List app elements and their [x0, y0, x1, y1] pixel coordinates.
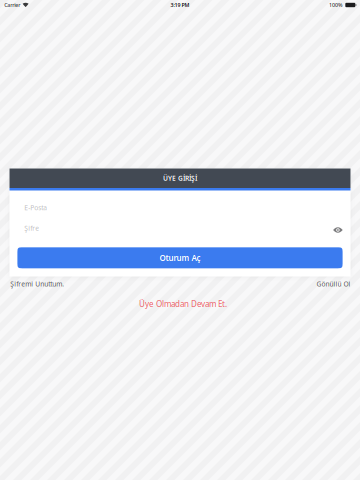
staticText: Üye Olmadan Devam Et. — [139, 298, 227, 309]
staticText: 100% — [329, 1, 343, 9]
button[interactable]: Şifremi Unuttum. — [10, 280, 64, 288]
staticText: Gönüllü Ol — [316, 280, 350, 288]
staticText: Şifremi Unuttum. — [10, 280, 64, 288]
staticText: E-Posta — [24, 203, 47, 212]
button[interactable]: Gönüllü Ol — [316, 280, 350, 288]
staticText: 3:19 PM — [170, 1, 189, 9]
staticText: Şifre — [24, 224, 39, 233]
staticText: ÜYE GİRİŞİ — [163, 174, 197, 183]
staticText: Oturum Aç — [159, 252, 200, 263]
staticText: Carrier — [4, 1, 20, 9]
button[interactable]: Üye Olmadan Devam Et. — [139, 298, 227, 309]
button[interactable]: Show password — [333, 223, 343, 233]
button[interactable]: Oturum Aç — [17, 247, 343, 268]
